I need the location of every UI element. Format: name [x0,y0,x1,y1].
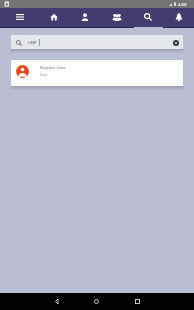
button[interactable]: Notifications [164,8,194,28]
button[interactable]: Recent apps [117,293,158,310]
staticText: User [40,73,47,77]
button[interactable]: Clear [170,37,182,49]
button[interactable]: Home [39,8,69,28]
button[interactable]: Search [133,8,163,28]
staticText: Regular User [40,65,66,71]
button[interactable]: Home [76,293,117,310]
button[interactable]: Groups [102,8,132,28]
button[interactable]: Menu [12,9,28,25]
button[interactable]: user [11,35,183,49]
staticText: 4:08 [178,1,187,7]
button[interactable]: Regular User [11,60,183,86]
button[interactable]: Profile [70,8,100,28]
button[interactable]: Back [35,293,76,310]
staticText: user [28,39,38,45]
